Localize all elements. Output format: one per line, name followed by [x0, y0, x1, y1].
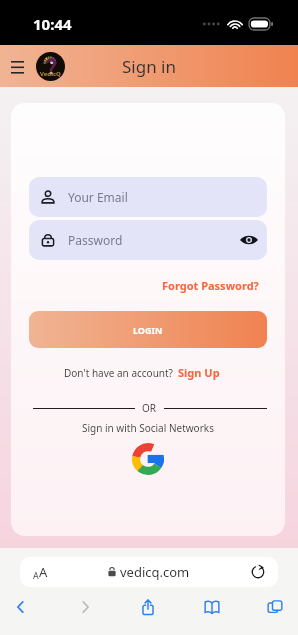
staticText: 10:44 [33, 14, 72, 34]
button[interactable]: Tabs [256, 588, 294, 626]
button[interactable]: Password [29, 220, 267, 260]
button[interactable]: Reload [251, 565, 265, 579]
button[interactable]: Your Email [29, 177, 267, 217]
button[interactable]: LOGIN [29, 311, 267, 348]
button[interactable]: Forgot Password? [162, 278, 259, 293]
staticText: VedicQ [40, 70, 61, 78]
button[interactable]: Share [129, 588, 167, 626]
button[interactable]: Forward [66, 588, 104, 626]
staticText: OR [142, 401, 157, 415]
button[interactable]: Back [2, 588, 40, 626]
button[interactable]: Sign in with Google [131, 442, 165, 476]
staticText: Sign in [122, 55, 176, 78]
staticText: vedicq.com [120, 563, 190, 581]
button[interactable]: Sign Up [178, 365, 220, 380]
staticText: A [39, 563, 48, 581]
staticText: A [33, 569, 39, 581]
button[interactable]: Menu [4, 53, 30, 79]
button[interactable]: A [20, 557, 278, 587]
staticText: Don't have an account? [64, 366, 173, 380]
staticText: Sign in with Social Networks [82, 421, 214, 435]
staticText: LOGIN [133, 324, 163, 336]
staticText: Password [68, 232, 123, 248]
button[interactable]: VedicQ logo [36, 52, 65, 81]
button[interactable]: Bookmarks [193, 588, 231, 626]
staticText: Your Email [68, 189, 128, 205]
